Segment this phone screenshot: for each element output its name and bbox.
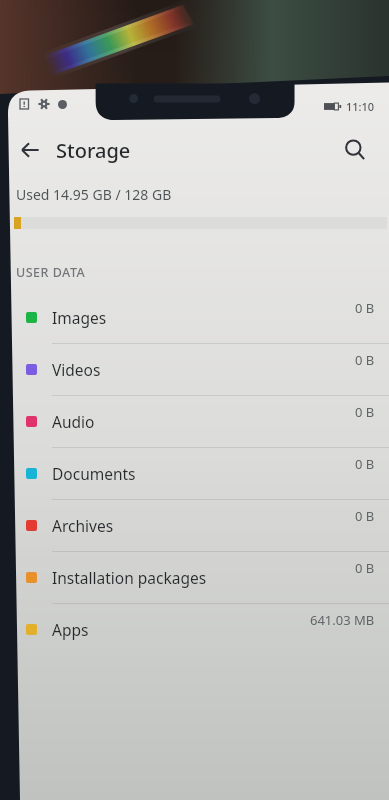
- staticText: 0 B: [355, 507, 375, 525]
- staticText: 0 B: [355, 559, 375, 577]
- staticText: 641.03 MB: [310, 611, 375, 629]
- button[interactable]: Archives: [0, 500, 389, 551]
- button[interactable]: Search: [333, 128, 377, 172]
- staticText: 0 B: [355, 455, 375, 473]
- staticText: Apps: [52, 619, 89, 640]
- staticText: USER DATA: [16, 264, 86, 281]
- staticText: Videos: [52, 359, 101, 380]
- staticText: 0 B: [355, 403, 375, 421]
- button[interactable]: Documents: [0, 448, 389, 499]
- button[interactable]: Images: [0, 292, 389, 343]
- staticText: Audio: [52, 411, 95, 432]
- button[interactable]: Apps: [0, 604, 389, 655]
- staticText: Storage: [56, 137, 131, 164]
- staticText: Documents: [52, 463, 136, 484]
- button[interactable]: Back: [8, 128, 52, 172]
- staticText: 11:10: [346, 99, 375, 114]
- button[interactable]: Installation packages: [0, 552, 389, 603]
- staticText: 0 B: [355, 351, 375, 369]
- staticText: 0 B: [355, 299, 375, 317]
- button[interactable]: Videos: [0, 344, 389, 395]
- staticText: Images: [52, 307, 107, 328]
- staticText: Archives: [52, 515, 114, 536]
- staticText: Installation packages: [52, 567, 207, 588]
- button[interactable]: Audio: [0, 396, 389, 447]
- staticText: Used 14.95 GB / 128 GB: [16, 185, 172, 204]
